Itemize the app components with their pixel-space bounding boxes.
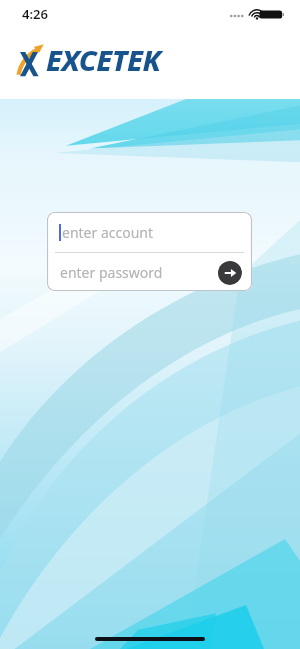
staticText: enter account bbox=[62, 223, 154, 242]
button[interactable]: Sign in bbox=[217, 260, 242, 285]
button[interactable]: enter password bbox=[60, 263, 217, 282]
staticText: enter password bbox=[60, 263, 163, 282]
staticText: 4:26 bbox=[22, 5, 48, 23]
button[interactable]: enter account bbox=[47, 212, 252, 252]
staticText: EXCETEK bbox=[46, 40, 161, 79]
